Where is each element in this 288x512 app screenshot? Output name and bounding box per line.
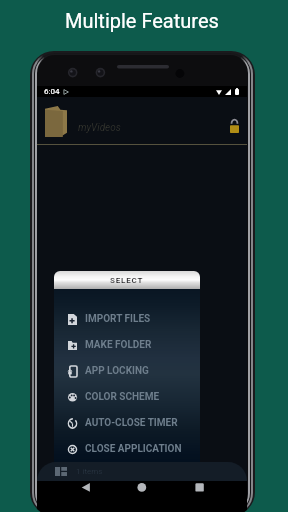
button[interactable]: IMPORT FILES bbox=[68, 306, 200, 332]
staticText: IMPORT FILES bbox=[85, 313, 151, 325]
staticText: Multiple Features bbox=[65, 9, 219, 32]
staticText: CLOSE APPLICATION bbox=[85, 443, 182, 455]
staticText: APP LOCKING bbox=[85, 365, 149, 377]
staticText: 1 items bbox=[76, 467, 103, 476]
staticText: COLOR SCHEME bbox=[85, 391, 160, 403]
button[interactable]: APP LOCKING bbox=[68, 358, 200, 384]
staticText: MAKE FOLDER bbox=[85, 339, 152, 351]
button[interactable]: CLOSE APPLICATION bbox=[68, 436, 200, 462]
staticText: myVideos bbox=[78, 122, 121, 134]
staticText: AUTO-CLOSE TIMER bbox=[85, 417, 178, 429]
staticText: SELECT bbox=[110, 276, 144, 285]
button[interactable]: SELECT bbox=[54, 271, 200, 289]
other: Lock bbox=[230, 119, 239, 133]
staticText: 6:04 bbox=[44, 87, 60, 96]
button[interactable]: 1 items bbox=[37, 462, 247, 481]
button[interactable]: COLOR SCHEME bbox=[68, 384, 200, 410]
button[interactable]: AUTO-CLOSE TIMER bbox=[68, 410, 200, 436]
button[interactable]: MAKE FOLDER bbox=[68, 332, 200, 358]
